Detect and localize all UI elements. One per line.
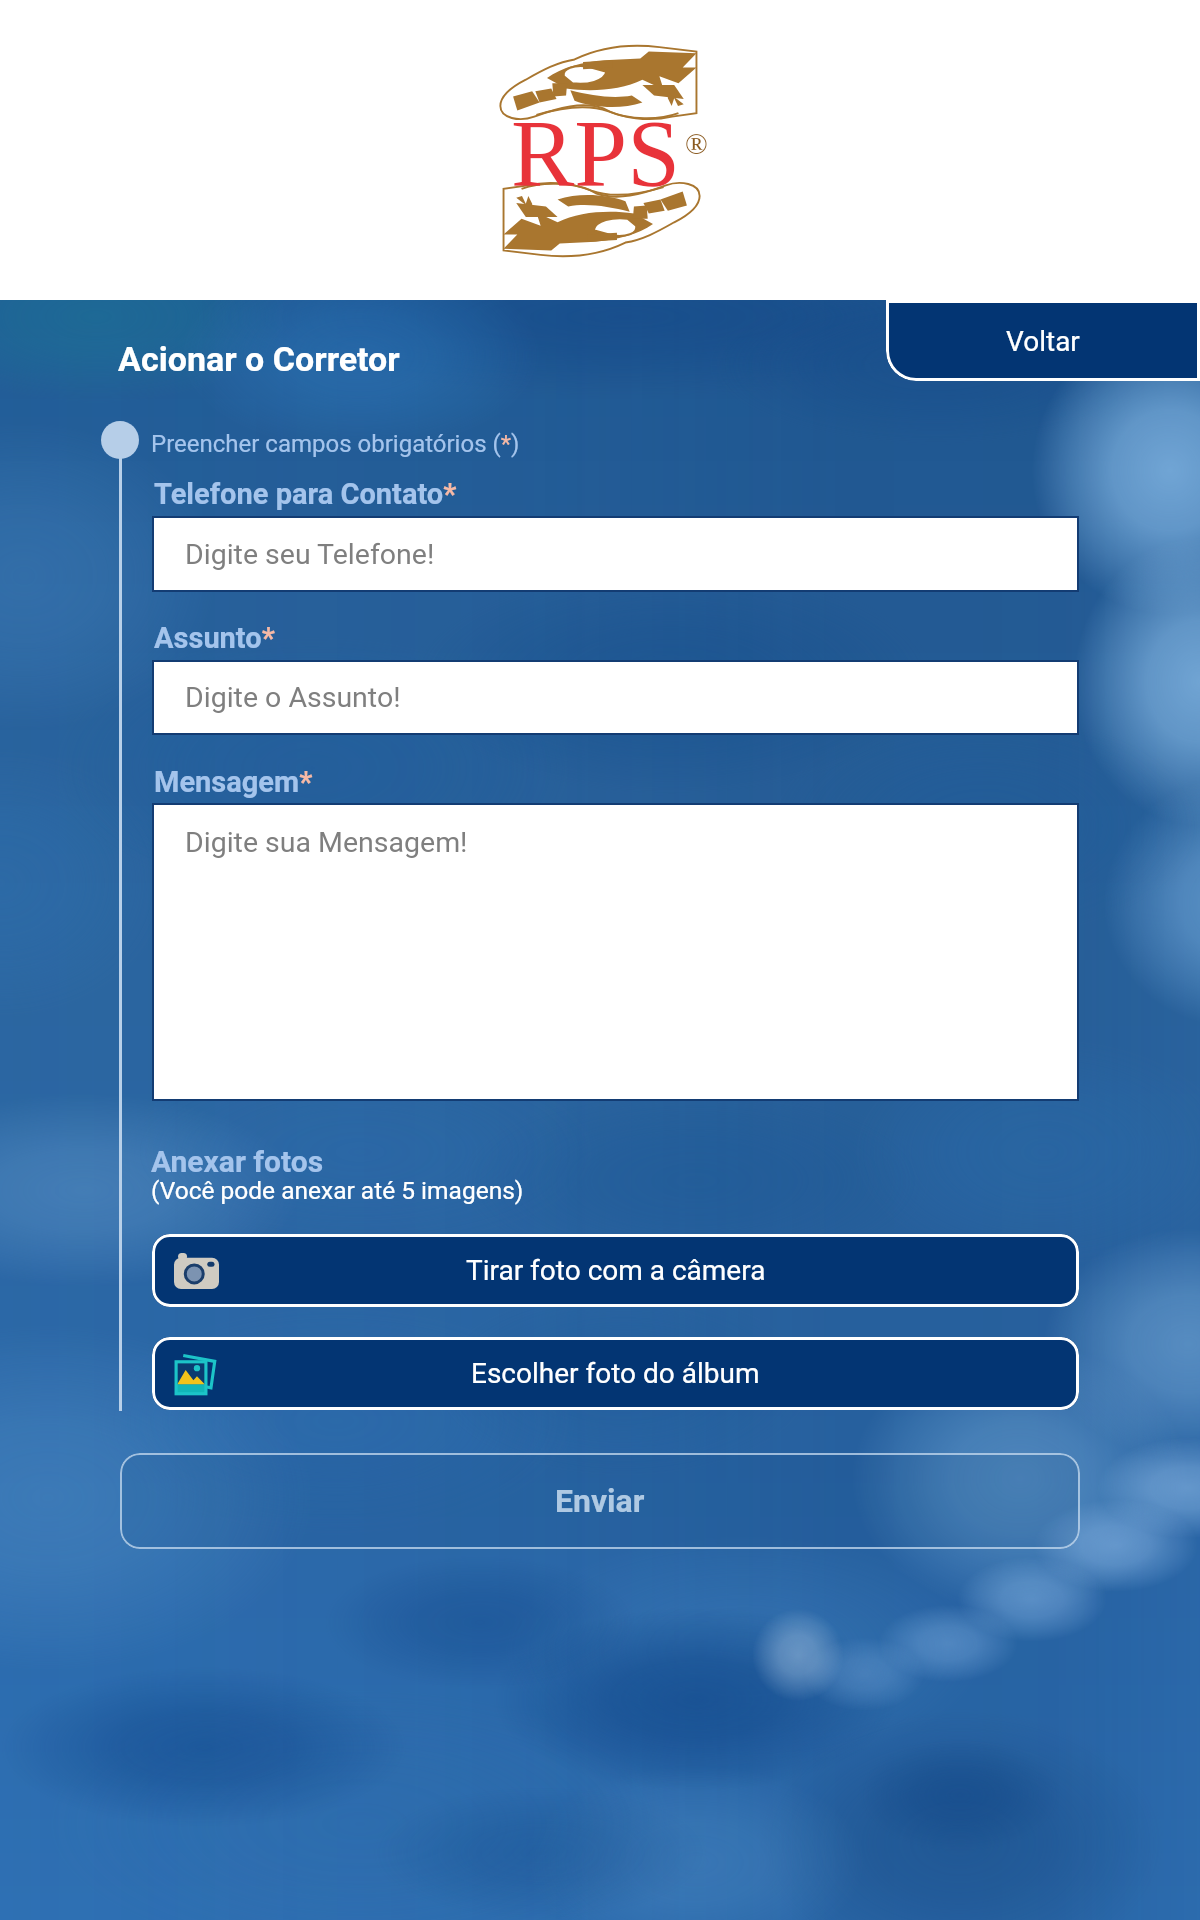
- other: Câmera: [174, 1253, 219, 1289]
- staticText: Acionar o Corretor: [118, 339, 400, 379]
- staticText: Digite o Assunto!: [185, 681, 401, 714]
- staticText: Preencher campos obrigatórios (*): [151, 430, 520, 458]
- staticText: Enviar: [555, 1482, 645, 1520]
- other: Álbum de fotos: [174, 1351, 216, 1396]
- button[interactable]: Enviar: [120, 1453, 1080, 1549]
- button[interactable]: Digite sua Mensagem!: [152, 803, 1079, 1101]
- staticText: Digite sua Mensagem!: [185, 826, 468, 859]
- staticText: Telefone para Contato*: [154, 477, 457, 511]
- staticText: Digite seu Telefone!: [185, 538, 435, 571]
- staticText: Voltar: [1006, 325, 1080, 358]
- button[interactable]: Voltar: [886, 300, 1200, 381]
- staticText: (Você pode anexar até 5 imagens): [151, 1176, 524, 1205]
- button[interactable]: Digite o Assunto!: [152, 660, 1079, 735]
- button[interactable]: Tirar foto com a câmera: [152, 1234, 1079, 1307]
- staticText: Assunto*: [154, 621, 275, 655]
- staticText: Anexar fotos: [151, 1144, 324, 1179]
- staticText: Escolher foto do álbum: [471, 1357, 760, 1390]
- button[interactable]: Escolher foto do álbum: [152, 1337, 1079, 1410]
- staticText: ®: [685, 127, 708, 160]
- button[interactable]: Digite seu Telefone!: [152, 516, 1079, 592]
- staticText: RPS: [511, 101, 681, 206]
- staticText: Mensagem*: [154, 765, 313, 799]
- staticText: Tirar foto com a câmera: [466, 1254, 766, 1287]
